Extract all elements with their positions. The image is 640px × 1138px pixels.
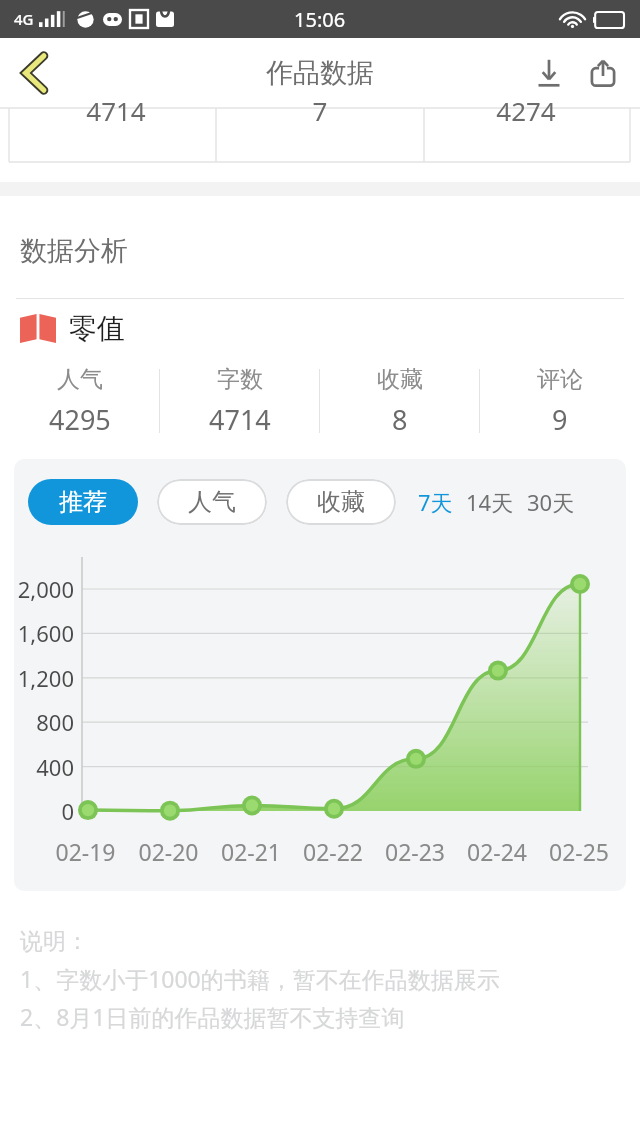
staticText: 1,200 [14,663,74,693]
staticText: 收藏 [317,487,365,517]
staticText: 15:06 [294,6,346,33]
staticText: 800 [14,707,74,737]
staticText: 02-23 [374,836,456,867]
staticText: 说明： [20,927,89,956]
staticText: 作品数据 [266,56,374,90]
staticText: 人气 [57,365,103,394]
staticText: 4714 [209,401,271,438]
staticText: 02-24 [456,836,538,867]
button[interactable]: Share [576,46,630,100]
staticText: 1,600 [14,618,74,648]
staticText: 数据分析 [20,234,128,268]
staticText: 0 [14,796,74,826]
staticText: 4274 [484,93,568,128]
staticText: 4G [14,9,34,29]
button[interactable]: 7天 [418,487,453,517]
staticText: 7 [278,93,362,128]
staticText: 4295 [49,401,111,438]
staticText: 零值 [69,311,125,346]
button[interactable]: 14天 [466,487,514,517]
staticText: 评论 [537,365,583,394]
staticText: 02-19 [44,836,127,867]
staticText: 收藏 [377,365,423,394]
staticText: 1、字数小于1000的书籍，暂不在作品数据展示 [20,963,500,994]
staticText: 02-21 [210,836,292,867]
staticText: 2,000 [14,574,74,604]
staticText: 字数 [217,365,263,394]
button[interactable]: 推荐 [28,479,138,525]
staticText: 2、8月1日前的作品数据暂不支持查询 [20,1001,405,1032]
button[interactable]: Back [6,44,64,102]
button[interactable]: 人气 [157,479,267,525]
staticText: 02-22 [292,836,374,867]
button[interactable]: 收藏 [286,479,396,525]
staticText: 02-20 [127,836,210,867]
button[interactable]: Download [522,46,576,100]
staticText: 人气 [188,487,236,517]
staticText: 推荐 [59,487,107,517]
staticText: 9 [552,401,568,438]
staticText: 02-25 [538,836,620,867]
button[interactable]: 30天 [527,487,575,517]
staticText: 4714 [74,93,158,128]
staticText: 8 [392,401,408,438]
staticText: 400 [14,752,74,782]
